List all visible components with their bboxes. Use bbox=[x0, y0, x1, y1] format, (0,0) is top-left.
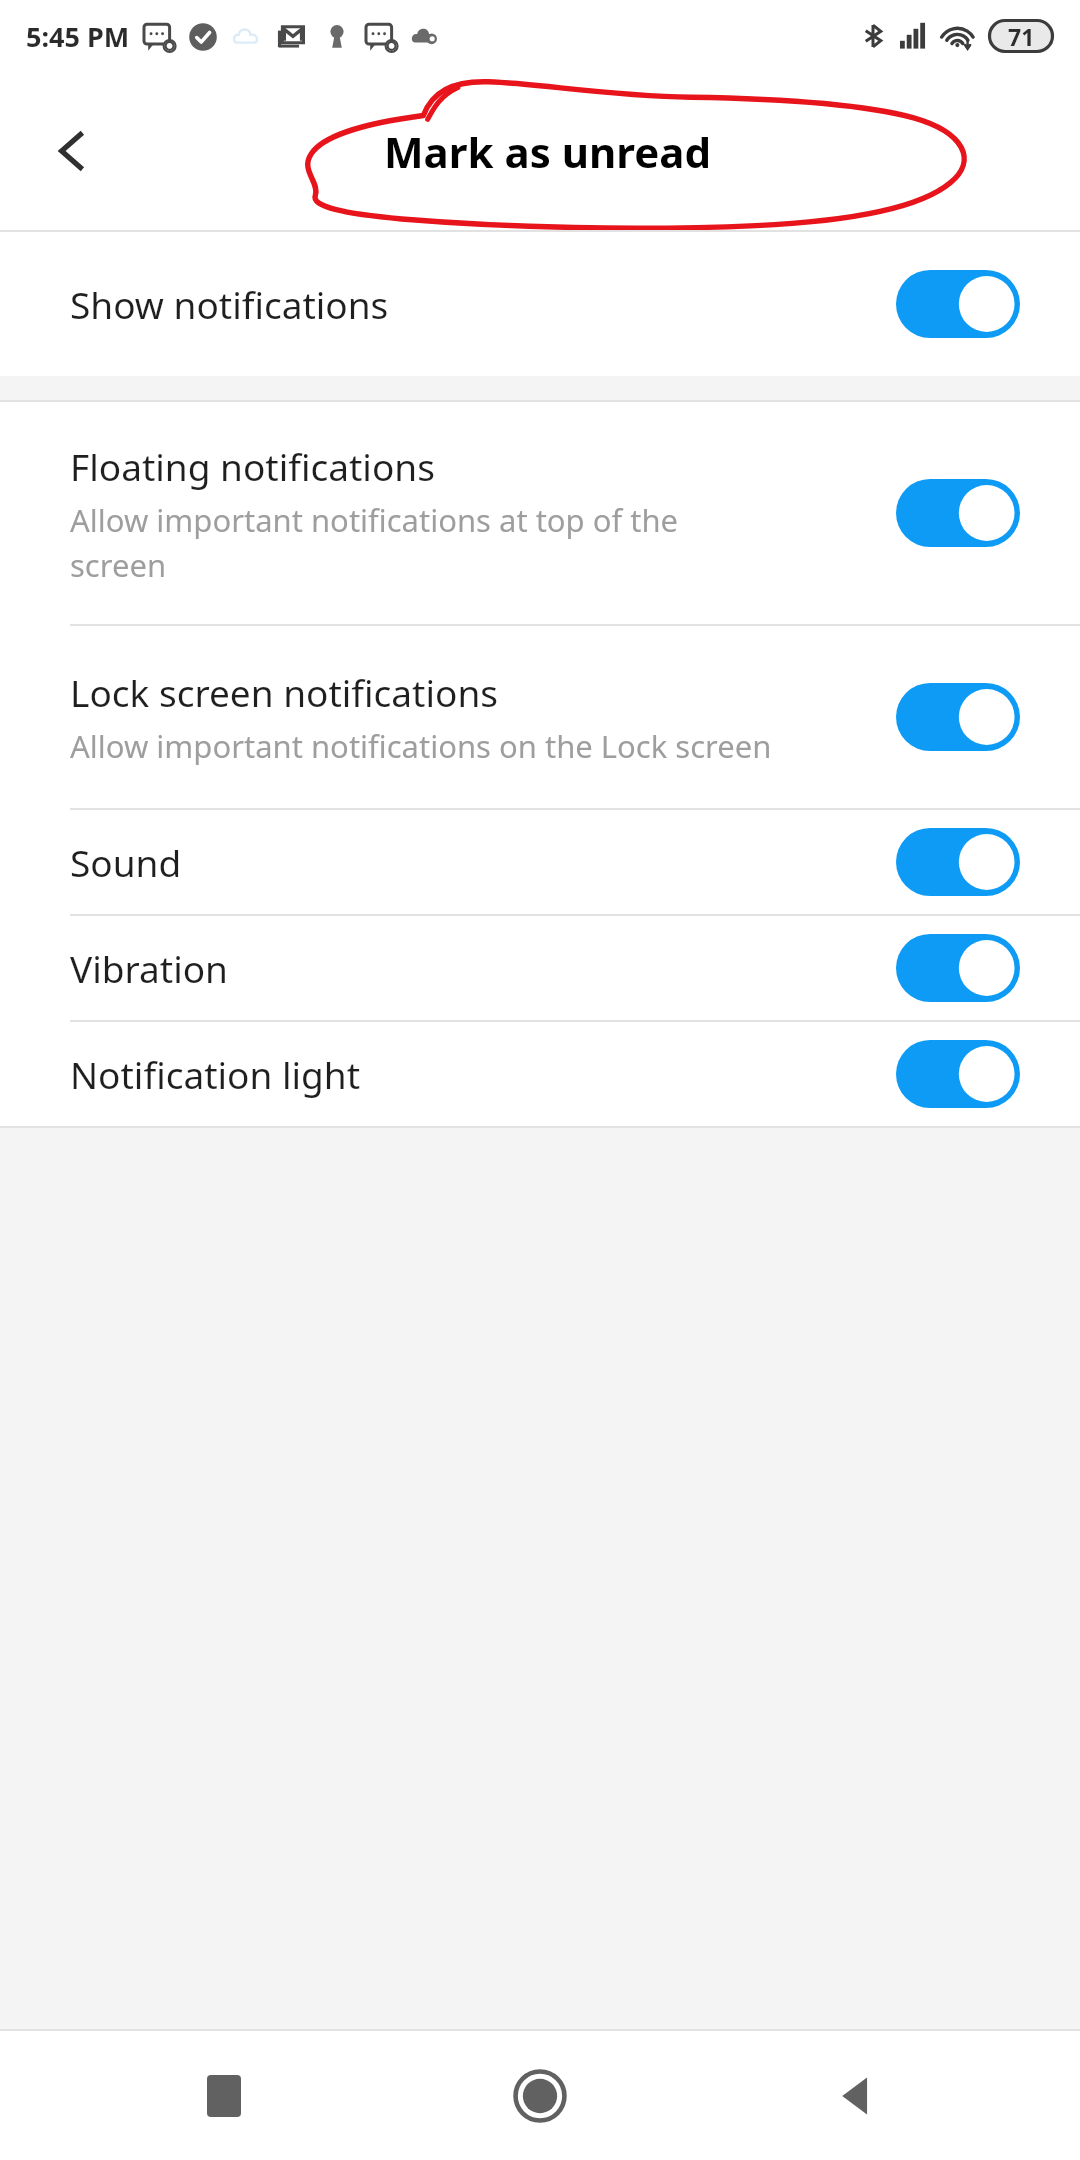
staticText: Allow important notifications at top of … bbox=[70, 499, 679, 586]
button[interactable]: Mark as unread bbox=[384, 123, 711, 180]
button[interactable]: Toggle, on bbox=[896, 1040, 1020, 1108]
button[interactable]: Toggle, on bbox=[896, 934, 1020, 1002]
staticText: Mark as unread bbox=[384, 123, 711, 180]
button[interactable]: Recent apps bbox=[176, 2048, 272, 2144]
staticText: Lock screen notifications bbox=[70, 667, 498, 717]
staticText: Show notifications bbox=[70, 279, 389, 329]
button[interactable]: Sound bbox=[0, 810, 1080, 914]
staticText: 71 bbox=[1008, 21, 1035, 52]
button[interactable]: Toggle, on bbox=[896, 479, 1020, 547]
staticText: Sound bbox=[70, 837, 182, 887]
staticText: Vibration bbox=[70, 943, 228, 993]
staticText: 5:45 PM bbox=[26, 18, 130, 55]
staticText: Notification light bbox=[70, 1049, 361, 1099]
button[interactable]: Toggle, on bbox=[896, 828, 1020, 896]
button[interactable]: Toggle, on bbox=[896, 683, 1020, 751]
button[interactable]: Lock screen notifications bbox=[0, 626, 1080, 808]
button[interactable]: Show notifications bbox=[0, 232, 1080, 376]
staticText: Allow important notifications on the Loc… bbox=[70, 725, 772, 767]
button[interactable]: Floating notifications bbox=[0, 402, 1080, 624]
button[interactable]: Home bbox=[492, 2048, 588, 2144]
button[interactable]: Toggle, on bbox=[896, 270, 1020, 338]
staticText: Floating notifications bbox=[70, 441, 435, 491]
button[interactable]: Notification light bbox=[0, 1022, 1080, 1126]
button[interactable]: Navigate up bbox=[24, 103, 120, 199]
button[interactable]: Vibration bbox=[0, 916, 1080, 1020]
button[interactable]: Back bbox=[808, 2048, 904, 2144]
